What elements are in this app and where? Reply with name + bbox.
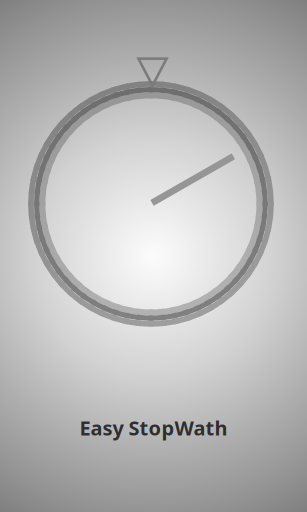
- staticText: Easy StopWath: [79, 414, 227, 441]
